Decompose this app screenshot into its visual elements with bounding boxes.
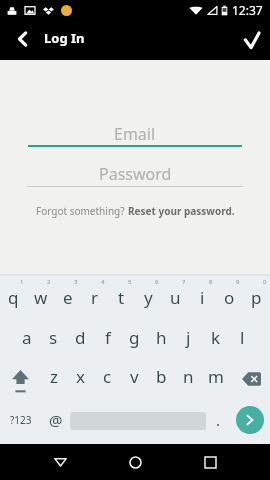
- staticText: y: [144, 286, 153, 309]
- button[interactable]: ?123: [0, 396, 42, 436]
- staticText: d: [75, 326, 86, 349]
- button[interactable]: Enter: [236, 406, 264, 434]
- button[interactable]: Back: [0, 18, 44, 58]
- staticText: Log In: [44, 29, 85, 47]
- button[interactable]: Reset your password.: [128, 204, 235, 218]
- button[interactable]: Recents: [192, 444, 228, 480]
- button[interactable]: a: [13, 318, 40, 356]
- button[interactable]: @: [42, 396, 70, 436]
- button[interactable]: p: [243, 276, 270, 318]
- staticText: r: [91, 286, 99, 309]
- button[interactable]: v: [121, 356, 148, 396]
- staticText: b: [156, 365, 167, 388]
- button[interactable]: b: [148, 356, 175, 396]
- button[interactable]: l: [229, 318, 256, 356]
- staticText: Forgot something?: [36, 204, 128, 218]
- button[interactable]: Space: [70, 396, 206, 436]
- staticText: z: [50, 365, 58, 388]
- button[interactable]: i: [189, 276, 216, 318]
- staticText: 6: [155, 278, 159, 286]
- staticText: 1: [20, 278, 24, 286]
- staticText: f: [105, 326, 111, 349]
- staticText: u: [170, 286, 181, 309]
- staticText: l: [240, 326, 245, 349]
- staticText: q: [8, 286, 19, 309]
- button[interactable]: z: [40, 356, 67, 396]
- staticText: c: [103, 365, 112, 388]
- staticText: k: [211, 326, 221, 349]
- staticText: 9: [236, 278, 240, 286]
- button[interactable]: g: [121, 318, 148, 356]
- staticText: 7: [182, 278, 186, 286]
- staticText: j: [186, 326, 191, 349]
- staticText: i: [200, 286, 205, 309]
- button[interactable]: Confirm: [226, 18, 270, 58]
- button[interactable]: u: [162, 276, 189, 318]
- staticText: .: [216, 410, 221, 430]
- button[interactable]: Shift: [0, 356, 40, 396]
- button[interactable]: x: [67, 356, 94, 396]
- button[interactable]: d: [67, 318, 94, 356]
- button[interactable]: t: [108, 276, 135, 318]
- staticText: Email: [114, 123, 156, 143]
- staticText: @: [49, 410, 63, 430]
- button[interactable]: .: [206, 396, 230, 436]
- staticText: 4: [101, 278, 105, 286]
- button[interactable]: f: [94, 318, 121, 356]
- button[interactable]: Backspace: [229, 356, 270, 396]
- button[interactable]: j: [175, 318, 202, 356]
- staticText: 5: [128, 278, 132, 286]
- button[interactable]: n: [175, 356, 202, 396]
- staticText: 0: [263, 278, 267, 286]
- staticText: a: [22, 326, 32, 349]
- button[interactable]: Home: [117, 444, 153, 480]
- staticText: g: [129, 326, 140, 349]
- staticText: t: [118, 286, 125, 309]
- button[interactable]: o: [216, 276, 243, 318]
- staticText: Password: [99, 163, 172, 183]
- button[interactable]: r: [81, 276, 108, 318]
- staticText: p: [251, 286, 262, 309]
- button[interactable]: m: [202, 356, 229, 396]
- button[interactable]: y: [135, 276, 162, 318]
- staticText: w: [34, 286, 48, 309]
- staticText: 2: [47, 278, 51, 286]
- button[interactable]: Email: [27, 123, 243, 143]
- staticText: 3: [74, 278, 78, 286]
- button[interactable]: Back: [42, 444, 78, 480]
- staticText: o: [224, 286, 235, 309]
- button[interactable]: e: [54, 276, 81, 318]
- button[interactable]: q: [0, 276, 27, 318]
- staticText: h: [156, 326, 167, 349]
- button[interactable]: Password: [27, 163, 243, 183]
- staticText: 8: [209, 278, 213, 286]
- staticText: s: [49, 326, 58, 349]
- button[interactable]: h: [148, 318, 175, 356]
- staticText: e: [63, 286, 73, 309]
- staticText: n: [183, 365, 194, 388]
- staticText: ?123: [10, 413, 32, 427]
- staticText: 12:37: [232, 2, 263, 18]
- staticText: m: [208, 365, 224, 388]
- staticText: v: [130, 365, 139, 388]
- button[interactable]: w: [27, 276, 54, 318]
- button[interactable]: c: [94, 356, 121, 396]
- button[interactable]: s: [40, 318, 67, 356]
- staticText: x: [76, 365, 85, 388]
- button[interactable]: k: [202, 318, 229, 356]
